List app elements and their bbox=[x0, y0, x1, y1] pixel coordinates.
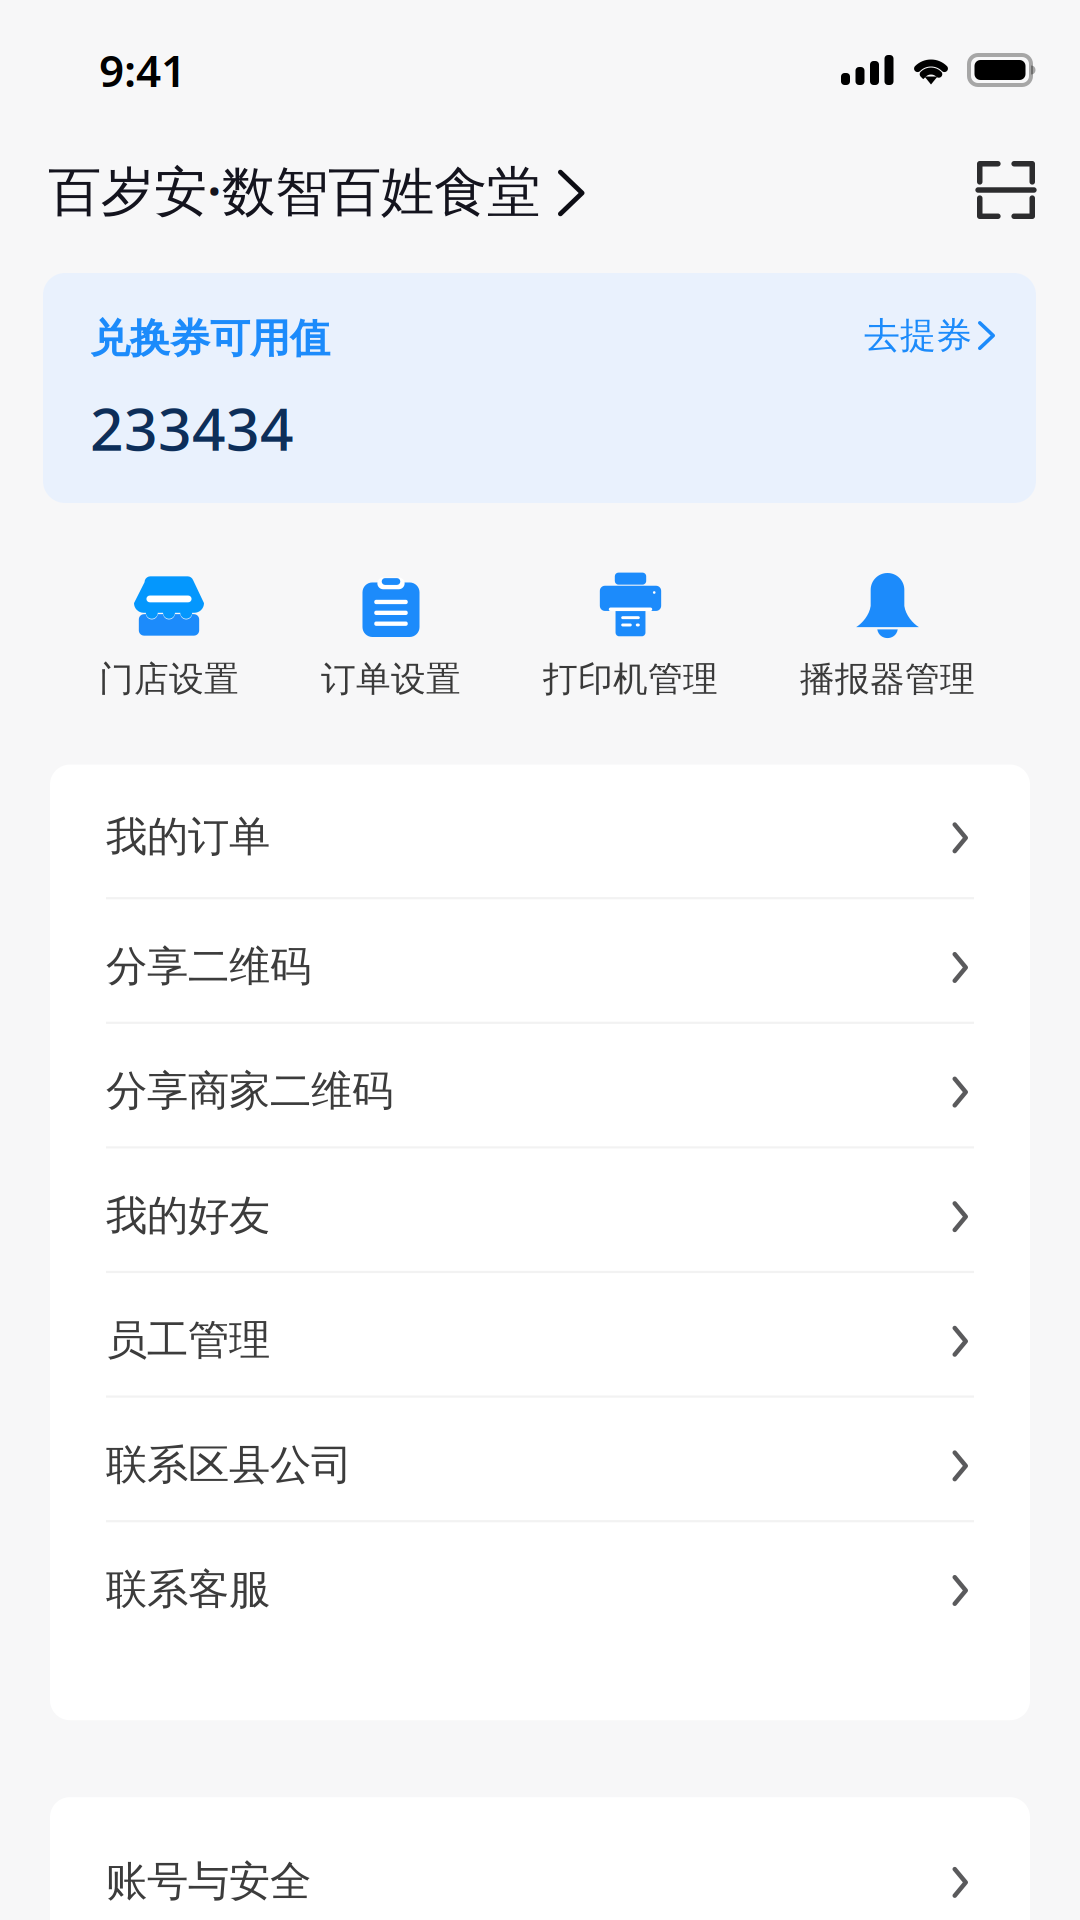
staticText: 分享商家二维码 bbox=[106, 1066, 393, 1116]
button[interactable]: 账号与安全 bbox=[50, 1814, 1030, 1920]
button[interactable]: 联系区县公司 bbox=[50, 1398, 1030, 1520]
staticText: 兑换券可用值 bbox=[90, 314, 330, 363]
button[interactable]: 我的好友 bbox=[50, 1148, 1030, 1271]
button[interactable]: 员工管理 bbox=[50, 1273, 1030, 1395]
button[interactable]: 门店设置 bbox=[99, 571, 239, 701]
staticText: 9:41 bbox=[99, 41, 186, 99]
button[interactable]: 播报器管理 bbox=[800, 571, 975, 701]
staticText: 员工管理 bbox=[106, 1315, 270, 1366]
button[interactable]: Scan QR code bbox=[977, 161, 1035, 219]
button[interactable]: 分享二维码 bbox=[50, 899, 1030, 1022]
staticText: 门店设置 bbox=[99, 658, 239, 701]
button[interactable]: 我的订单 bbox=[50, 765, 1030, 897]
staticText: 233434 bbox=[90, 389, 294, 467]
button[interactable]: 兑换券可用值 bbox=[43, 273, 1036, 503]
staticText: 播报器管理 bbox=[800, 658, 975, 701]
staticText: 账号与安全 bbox=[106, 1856, 311, 1907]
staticText: 我的订单 bbox=[106, 811, 270, 862]
button[interactable]: 订单设置 bbox=[321, 571, 461, 701]
button[interactable]: 百岁安·数智百姓食堂 bbox=[48, 155, 584, 225]
staticText: 分享二维码 bbox=[106, 941, 311, 992]
button[interactable]: 分享商家二维码 bbox=[50, 1024, 1030, 1146]
staticText: 订单设置 bbox=[321, 658, 461, 701]
staticText: 去提券 bbox=[864, 313, 972, 358]
button[interactable]: 联系客服 bbox=[50, 1522, 1030, 1645]
staticText: 打印机管理 bbox=[543, 658, 718, 701]
button[interactable]: 打印机管理 bbox=[543, 571, 718, 701]
staticText: 我的好友 bbox=[106, 1190, 270, 1241]
staticText: 百岁安·数智百姓食堂 bbox=[48, 155, 540, 225]
staticText: 联系区县公司 bbox=[106, 1439, 352, 1490]
staticText: 联系客服 bbox=[106, 1564, 270, 1615]
